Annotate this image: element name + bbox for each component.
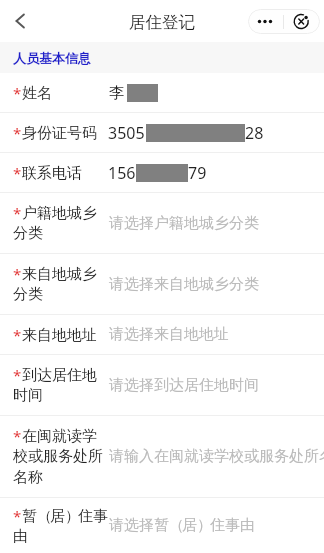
staticText: *	[13, 83, 22, 103]
button[interactable]: *	[0, 193, 324, 254]
staticText: 姓名	[22, 84, 52, 103]
staticText: *	[13, 426, 22, 446]
button[interactable]: *	[0, 315, 324, 355]
button[interactable]: *	[0, 113, 324, 153]
staticText: 到达居住地	[22, 366, 97, 385]
staticText: 79	[188, 162, 207, 184]
button[interactable]: *	[0, 73, 324, 113]
staticText: 来自地地址	[22, 326, 97, 345]
staticText: 人员基本信息	[13, 50, 91, 66]
staticText: 校或服务处所	[13, 447, 103, 466]
staticText: ）	[197, 516, 210, 535]
staticText: *	[13, 123, 22, 143]
button[interactable]: *	[0, 355, 324, 416]
staticText: *	[13, 264, 22, 284]
staticText: 暂	[22, 507, 37, 526]
staticText: 居	[182, 516, 197, 535]
staticText: 来自地城乡	[22, 265, 97, 284]
staticText: 请输入在闽就读学校或服务处所名称	[109, 447, 324, 466]
staticText: 分类	[13, 224, 43, 243]
staticText: 在闽就读学	[22, 427, 97, 446]
staticText: 28	[245, 122, 264, 144]
staticText: 请选择来自地地址	[109, 325, 229, 344]
staticText: *	[13, 163, 22, 183]
staticText: 住事由	[210, 516, 255, 535]
button[interactable]: Back	[5, 5, 37, 37]
staticText: 户籍地城乡	[22, 204, 97, 223]
staticText: 李	[109, 83, 125, 103]
staticText: 请选择到达居住地时间	[109, 376, 259, 395]
staticText: *	[13, 325, 22, 345]
staticText: 由	[13, 527, 28, 546]
staticText: 3505	[108, 122, 145, 144]
button[interactable]: Close	[283, 9, 320, 34]
staticText: 分类	[13, 285, 43, 304]
button[interactable]: *	[0, 254, 324, 315]
staticText: 居住登记	[129, 12, 195, 33]
staticText: （	[169, 516, 182, 535]
staticText: *	[13, 365, 22, 385]
button[interactable]: *	[0, 153, 324, 193]
button[interactable]: *	[0, 416, 324, 498]
staticText: 请选择来自地城乡分类	[109, 275, 259, 294]
staticText: 名称	[13, 468, 43, 487]
staticText: （	[37, 507, 50, 526]
staticText: 住事	[78, 507, 108, 526]
button[interactable]: *	[0, 498, 324, 553]
staticText: ）	[65, 507, 78, 526]
staticText: 156	[108, 162, 136, 184]
staticText: *	[13, 203, 22, 223]
staticText: 身份证号码	[22, 124, 97, 143]
staticText: 请选择暂	[109, 516, 169, 535]
staticText: 居	[50, 507, 65, 526]
staticText: 联系电话	[22, 164, 82, 183]
staticText: 请选择户籍地城乡分类	[109, 214, 259, 233]
button[interactable]: More options	[248, 9, 283, 34]
staticText: 时间	[13, 386, 43, 405]
staticText: *	[13, 506, 22, 526]
